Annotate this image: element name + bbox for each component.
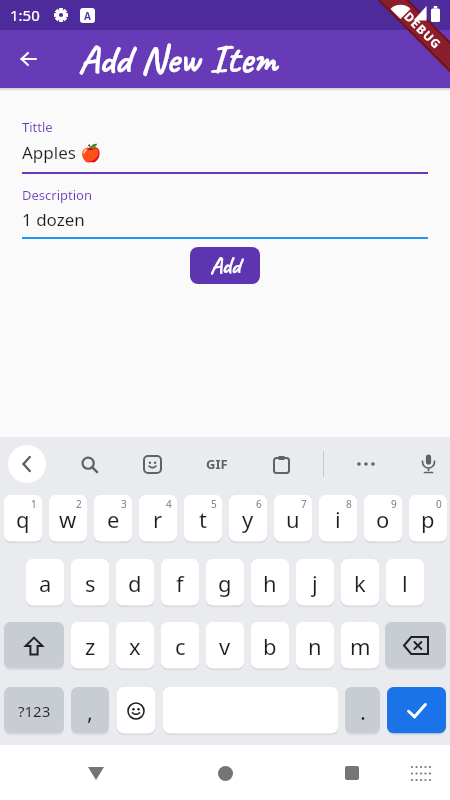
button[interactable]: h (251, 559, 289, 606)
staticText: s (85, 568, 96, 598)
button[interactable] (385, 622, 446, 669)
staticText: n (308, 631, 322, 661)
staticText: A (84, 9, 91, 23)
button[interactable]: c (161, 622, 199, 669)
button[interactable]: s (71, 559, 109, 606)
staticText: m (350, 631, 371, 661)
staticText: q (16, 504, 30, 534)
staticText: 8 (346, 497, 352, 511)
button[interactable] (4, 622, 64, 669)
staticText: j (312, 568, 318, 598)
staticText: 5 (211, 497, 217, 511)
staticText: 1:50 (10, 5, 40, 25)
button[interactable] (261, 444, 301, 484)
staticText: k (354, 568, 366, 598)
staticText: o (376, 504, 390, 534)
staticText: p (421, 504, 435, 534)
staticText: e (107, 504, 120, 534)
staticText: DEBUG (401, 8, 446, 53)
staticText: d (128, 568, 142, 598)
staticText: y (242, 504, 254, 534)
button[interactable]: GIF (195, 442, 239, 486)
button[interactable]: j (296, 559, 334, 606)
staticText: 3 (121, 497, 127, 511)
staticText: u (286, 504, 300, 534)
button[interactable]: l (386, 559, 424, 606)
staticText: 1 dozen (22, 208, 85, 231)
staticText: Add (210, 251, 241, 280)
button[interactable]: ?123 (4, 687, 64, 734)
button[interactable] (336, 757, 368, 789)
button[interactable]: b (251, 622, 289, 669)
staticText: . (360, 696, 366, 726)
staticText: 6 (256, 497, 262, 511)
button[interactable]: a (26, 559, 64, 606)
staticText: 9 (391, 497, 397, 511)
staticText: l (402, 568, 408, 598)
staticText: a (39, 568, 52, 598)
button[interactable]: q (4, 495, 42, 542)
button[interactable] (405, 757, 437, 789)
button[interactable]: z (71, 622, 109, 669)
button[interactable]: o (364, 495, 402, 542)
button[interactable] (80, 757, 112, 789)
staticText: 2 (76, 497, 82, 511)
staticText: Tittle (22, 118, 53, 136)
staticText: Add New Item (78, 34, 277, 84)
staticText: , (87, 696, 93, 726)
staticText: 1 (31, 497, 37, 511)
staticText: 0 (436, 497, 442, 511)
staticText: c (175, 631, 186, 661)
button[interactable]: u (274, 495, 312, 542)
staticText: ?123 (18, 701, 51, 721)
staticText: 4 (166, 497, 172, 511)
staticText: b (263, 631, 277, 661)
button[interactable] (346, 444, 386, 484)
staticText: g (218, 568, 232, 598)
button[interactable] (163, 687, 338, 734)
button[interactable]: n (296, 622, 334, 669)
button[interactable]: w (49, 495, 87, 542)
button[interactable]: Add (190, 247, 260, 284)
staticText: i (335, 504, 341, 534)
button[interactable] (387, 687, 446, 734)
button[interactable]: g (206, 559, 244, 606)
button[interactable] (0, 31, 56, 87)
staticText: r (153, 504, 163, 534)
staticText: v (219, 631, 231, 661)
button[interactable]: i (319, 495, 357, 542)
staticText: h (263, 568, 277, 598)
button[interactable]: k (341, 559, 379, 606)
button[interactable] (408, 444, 448, 484)
button[interactable]: p (409, 495, 447, 542)
button[interactable]: f (161, 559, 199, 606)
staticText: GIF (206, 455, 228, 473)
staticText: z (85, 631, 96, 661)
staticText: w (59, 504, 77, 534)
button[interactable]: t (184, 495, 222, 542)
staticText: 7 (301, 497, 307, 511)
button[interactable]: x (116, 622, 154, 669)
button[interactable]: e (94, 495, 132, 542)
button[interactable]: m (341, 622, 379, 669)
button[interactable]: y (229, 495, 267, 542)
button[interactable]: . (345, 687, 380, 734)
button[interactable] (69, 444, 109, 484)
staticText: Apples 🍎 (22, 141, 102, 164)
button[interactable] (117, 687, 155, 734)
button[interactable]: v (206, 622, 244, 669)
button[interactable] (8, 445, 46, 483)
staticText: f (176, 568, 184, 598)
button[interactable]: r (139, 495, 177, 542)
button[interactable]: , (71, 687, 109, 734)
staticText: t (199, 504, 207, 534)
button[interactable] (132, 444, 172, 484)
staticText: x (129, 631, 141, 661)
button[interactable] (209, 757, 241, 789)
staticText: Description (22, 186, 92, 204)
button[interactable]: d (116, 559, 154, 606)
